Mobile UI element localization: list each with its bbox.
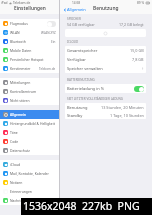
staticText: Persönlicher Hotspot <box>10 57 44 62</box>
staticText: BATTERIENUTZUNG <box>67 78 95 82</box>
button[interactable]: Erinnerungen <box>0 187 59 196</box>
staticText: Mobile Daten <box>10 48 32 53</box>
button[interactable]: Datenschutz <box>0 146 59 155</box>
staticText: Speicher verwalten <box>67 66 103 71</box>
other: Flugmodus aus <box>47 21 56 27</box>
staticText: 13 Stunden, 20 Minuten <box>101 105 144 110</box>
button[interactable]: Nicht stören <box>0 96 59 105</box>
button[interactable]: Nachrichten <box>0 196 59 205</box>
staticText: Töne <box>10 130 18 135</box>
staticText: Standby <box>67 113 83 118</box>
staticText: Nicht stören <box>10 98 30 103</box>
staticText: 7,8 GB <box>132 57 144 62</box>
button[interactable]: iCloud <box>0 160 59 169</box>
staticText: SPEICHER <box>67 17 81 21</box>
button[interactable]: Mail, Kontakte, Kalender <box>0 169 59 178</box>
button[interactable]: Hintergrundbild & Helligkeit <box>0 119 59 128</box>
button[interactable]: Mobile Daten <box>0 46 59 55</box>
staticText: Benutzung <box>93 5 119 12</box>
staticText: Bluetooth <box>10 39 26 44</box>
staticText: Hintergrundbild & Helligkeit <box>10 121 55 126</box>
staticText: iPad <box>1 1 8 5</box>
staticText: Kontrollzentrum <box>10 89 37 94</box>
staticText: 15,0 GB <box>130 48 144 53</box>
staticText: 1536x2048 227kb PNG <box>23 199 140 213</box>
staticText: WLAN-XYZ <box>41 31 56 35</box>
button[interactable]: Batterieladung in % <box>65 84 146 93</box>
staticText: Benutzung <box>67 105 88 110</box>
button[interactable]: Code <box>0 137 59 146</box>
staticText: Allgemein <box>67 7 86 12</box>
staticText: Telekom.de <box>39 67 56 71</box>
staticText: SEIT LETZTER VOLLSTÄNDIGER LADUNG <box>67 97 123 101</box>
staticText: 14:58 <box>72 1 81 5</box>
button[interactable]: Flugmodus <box>0 19 59 28</box>
button[interactable]: Speicher verwalten <box>65 64 146 73</box>
staticText: Code <box>10 139 19 144</box>
staticText: Nachrichten <box>10 198 30 203</box>
button[interactable]: Persönlicher Hotspot <box>0 55 59 64</box>
button[interactable]: Allgemein <box>60 7 89 14</box>
staticText: Einstellungen <box>14 5 46 12</box>
staticText: WLAN <box>10 30 20 35</box>
staticText: Kerstinmeier <box>10 66 31 71</box>
button[interactable]: WLAN <box>0 28 59 37</box>
staticText: Verfügbar <box>67 57 86 62</box>
button[interactable]: Bluetooth <box>0 37 59 46</box>
staticText: Notizen <box>10 180 23 185</box>
button[interactable]: Standby <box>65 111 146 119</box>
staticText: iCloud <box>10 162 21 167</box>
staticText: 89 % <box>137 1 145 5</box>
staticText: Telekom.de <box>13 1 31 5</box>
staticText: Mitteilungen <box>10 80 31 85</box>
staticText: ICLOUD <box>67 40 79 44</box>
staticText: Allgemein <box>10 112 26 117</box>
button[interactable]: Notizen <box>0 178 59 187</box>
staticText: Flugmodus <box>10 21 28 26</box>
staticText: Mail, Kontakte, Kalender <box>10 171 49 176</box>
button[interactable]: Kerstinmeier <box>0 64 59 73</box>
staticText: Gesamtspeicher <box>67 48 98 53</box>
button[interactable]: Töne <box>0 128 59 137</box>
button[interactable]: Mitteilungen <box>0 78 59 87</box>
button[interactable]: Gesamtspeicher <box>65 46 146 55</box>
other: Batterieladung in % ein <box>134 86 144 92</box>
button[interactable]: Verfügbar <box>65 55 146 64</box>
staticText: Ein <box>51 40 56 44</box>
staticText: 1 Tage, 10 Stunden <box>110 113 144 118</box>
staticText: Datenschutz <box>10 148 30 153</box>
staticText: 54 GB verfügbar <box>67 22 95 27</box>
button[interactable]: Benutzung <box>65 103 146 111</box>
staticText: Erinnerungen <box>10 189 32 194</box>
staticText: Batterieladung in % <box>67 86 104 91</box>
staticText: 17,2 GB belegt <box>119 22 144 27</box>
button[interactable]: Allgemein <box>0 110 59 119</box>
button[interactable]: Kontrollzentrum <box>0 87 59 96</box>
